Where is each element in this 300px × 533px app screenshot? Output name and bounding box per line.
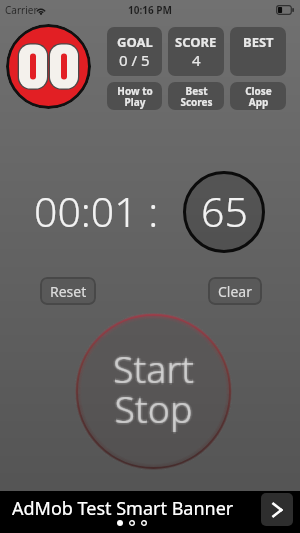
staticText: Best Scores <box>180 84 213 109</box>
button[interactable]: Reset <box>40 277 96 305</box>
staticText: How to Play <box>117 84 153 109</box>
staticText: Start Stop <box>113 341 194 432</box>
button[interactable]: AdMob Test Smart Banner <box>0 491 300 533</box>
staticText: SCORE <box>175 33 217 51</box>
staticText: AdMob Test Smart Banner <box>12 496 234 521</box>
staticText: 00:01 : <box>34 183 159 239</box>
staticText: Clear <box>218 282 252 301</box>
button[interactable]: BEST <box>230 27 286 76</box>
button[interactable]: Start Stop <box>75 313 232 470</box>
staticText: Start Stop <box>115 343 196 434</box>
staticText: Start Stop <box>112 343 193 434</box>
staticText: Start Stop <box>113 344 194 435</box>
staticText: Carrier <box>5 3 38 17</box>
staticText: Start Stop <box>113 343 194 434</box>
staticText: 65 <box>201 183 248 239</box>
button[interactable]: How to Play <box>107 82 162 110</box>
staticText: BEST <box>243 33 274 51</box>
staticText: Start Stop <box>114 343 195 434</box>
button[interactable]: SCORE <box>168 27 224 76</box>
button[interactable]: Logo <box>6 24 91 109</box>
staticText: 10:16 PM <box>128 3 172 17</box>
staticText: Start Stop <box>113 342 194 433</box>
button[interactable]: Next <box>261 493 293 526</box>
button[interactable]: Close App <box>230 82 286 110</box>
staticText: 0 / 5 <box>119 50 150 70</box>
staticText: Reset <box>50 282 87 301</box>
staticText: Start Stop <box>111 343 192 434</box>
staticText: GOAL <box>117 33 153 51</box>
button[interactable]: Best Scores <box>168 82 224 110</box>
button[interactable]: GOAL <box>107 27 162 76</box>
staticText: Start Stop <box>113 345 194 436</box>
staticText: Close App <box>245 84 272 109</box>
staticText: 4 <box>192 50 201 70</box>
button[interactable]: Clear <box>208 277 262 305</box>
